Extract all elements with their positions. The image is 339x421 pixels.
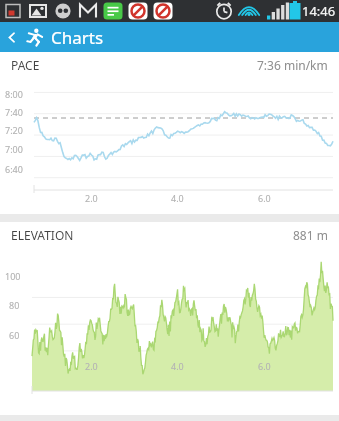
staticText: 7:36 min/km (257, 57, 328, 73)
button[interactable]: PACE (0, 52, 339, 214)
staticText: 7:20 (5, 124, 23, 136)
staticText: 60 (9, 329, 20, 341)
staticText: 7:40 (5, 106, 23, 118)
staticText: 881 m (293, 227, 328, 243)
staticText: Charts (51, 26, 104, 49)
button[interactable]: ELEVATION (0, 222, 339, 415)
staticText: 100 (5, 270, 21, 282)
staticText: ELEVATION (11, 227, 74, 243)
staticText: 6:40 (5, 163, 23, 175)
staticText: 80 (9, 299, 20, 311)
staticText: 7:00 (5, 143, 23, 155)
staticText: 4.0 (171, 360, 184, 372)
staticText: 8:00 (5, 88, 23, 100)
staticText: 2.0 (85, 192, 98, 204)
staticText: 2.0 (85, 360, 98, 372)
staticText: 4.0 (171, 192, 184, 204)
staticText: PACE (11, 57, 40, 73)
button[interactable]: Back (0, 22, 22, 52)
staticText: 14:46 (302, 2, 336, 20)
staticText: 6.0 (258, 192, 271, 204)
staticText: 6.0 (258, 360, 271, 372)
